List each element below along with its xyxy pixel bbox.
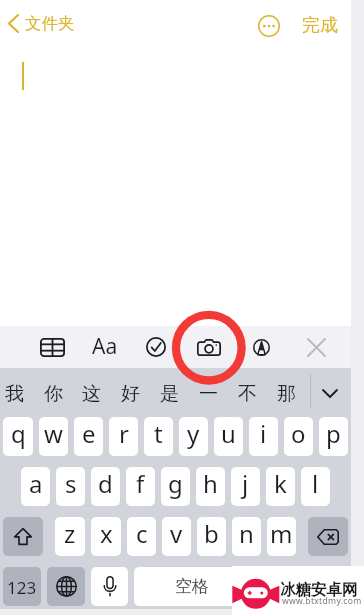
button[interactable]: Camera: [191, 326, 227, 368]
button[interactable]: a: [21, 467, 50, 506]
staticText: h: [203, 467, 218, 500]
staticText: q: [11, 417, 26, 450]
staticText: 好: [121, 382, 140, 406]
button[interactable]: 文件夹: [8, 13, 75, 34]
staticText: 那: [277, 382, 296, 406]
button[interactable]: Switch keyboard: [47, 567, 85, 606]
button[interactable]: 你: [34, 368, 73, 417]
staticText: 文件夹: [25, 13, 75, 34]
staticText: k: [274, 467, 287, 500]
button[interactable]: i: [249, 417, 278, 456]
staticText: 一: [199, 382, 218, 406]
staticText: b: [204, 517, 219, 550]
button[interactable]: Dictate: [91, 567, 128, 606]
staticText: a: [29, 467, 43, 500]
button[interactable]: y: [179, 417, 208, 456]
button[interactable]: 完成: [300, 11, 340, 40]
button[interactable]: 123: [3, 567, 41, 606]
button[interactable]: d: [91, 467, 120, 506]
button[interactable]: 一: [189, 368, 228, 417]
button[interactable]: 好: [111, 368, 150, 417]
button[interactable]: More options: [256, 13, 282, 39]
button[interactable]: q: [3, 417, 33, 456]
staticText: j: [242, 467, 249, 500]
button[interactable]: f: [126, 467, 155, 506]
staticText: 完成: [302, 14, 338, 37]
button[interactable]: Shift: [3, 517, 43, 556]
staticText: r: [119, 417, 129, 450]
staticText: 冰糖安卓网: [280, 580, 358, 600]
staticText: www.btxtdmy.com: [282, 595, 362, 607]
staticText: o: [291, 417, 306, 450]
button[interactable]: m: [267, 517, 296, 556]
button[interactable]: 不: [228, 368, 267, 417]
button[interactable]: v: [162, 517, 191, 556]
staticText: 这: [82, 382, 101, 406]
staticText: z: [64, 517, 76, 550]
staticText: d: [98, 467, 113, 500]
staticText: 我: [5, 382, 24, 406]
button[interactable]: Backspace: [308, 517, 348, 556]
staticText: w: [44, 417, 63, 450]
staticText: t: [154, 417, 163, 450]
staticText: f: [136, 467, 145, 500]
button[interactable]: o: [284, 417, 313, 456]
button[interactable]: z: [55, 517, 85, 556]
button[interactable]: k: [266, 467, 295, 506]
staticText: 是: [160, 382, 179, 406]
button[interactable]: Aa: [87, 326, 123, 368]
button[interactable]: j: [231, 467, 260, 506]
button[interactable]: Checklist: [138, 326, 174, 368]
staticText: s: [65, 467, 77, 500]
staticText: 123: [7, 576, 37, 599]
button[interactable]: 那: [267, 368, 306, 417]
button[interactable]: e: [74, 417, 103, 456]
button[interactable]: t: [144, 417, 173, 456]
button[interactable]: n: [232, 517, 261, 556]
staticText: 不: [238, 382, 257, 406]
staticText: x: [100, 517, 113, 550]
staticText: Aa: [92, 332, 118, 361]
button[interactable]: 是: [150, 368, 189, 417]
button[interactable]: s: [56, 467, 85, 506]
button[interactable]: c: [127, 517, 156, 556]
staticText: v: [170, 517, 183, 550]
button[interactable]: x: [91, 517, 121, 556]
staticText: 空格: [175, 576, 209, 597]
staticText: e: [82, 417, 96, 450]
button[interactable]: Insert table: [34, 326, 70, 368]
button[interactable]: p: [319, 417, 348, 456]
staticText: u: [221, 417, 236, 450]
button[interactable]: Close keyboard: [298, 326, 334, 368]
button[interactable]: b: [197, 517, 226, 556]
staticText: 你: [44, 382, 63, 406]
button[interactable]: h: [196, 467, 225, 506]
staticText: c: [136, 517, 148, 550]
button[interactable]: Expand suggestions: [313, 368, 347, 417]
button[interactable]: 我: [0, 368, 34, 417]
staticText: g: [168, 467, 183, 500]
staticText: n: [239, 517, 254, 550]
staticText: i: [260, 417, 267, 450]
button[interactable]: g: [161, 467, 190, 506]
staticText: p: [326, 417, 341, 450]
staticText: y: [187, 417, 200, 450]
button[interactable]: r: [109, 417, 138, 456]
button[interactable]: 空格: [134, 567, 348, 606]
button[interactable]: u: [214, 417, 243, 456]
staticText: l: [312, 467, 319, 500]
button[interactable]: 这: [72, 368, 111, 417]
button[interactable]: Markup: [243, 326, 279, 368]
staticText: m: [270, 517, 293, 550]
button[interactable]: w: [39, 417, 68, 456]
button[interactable]: l: [301, 467, 330, 506]
